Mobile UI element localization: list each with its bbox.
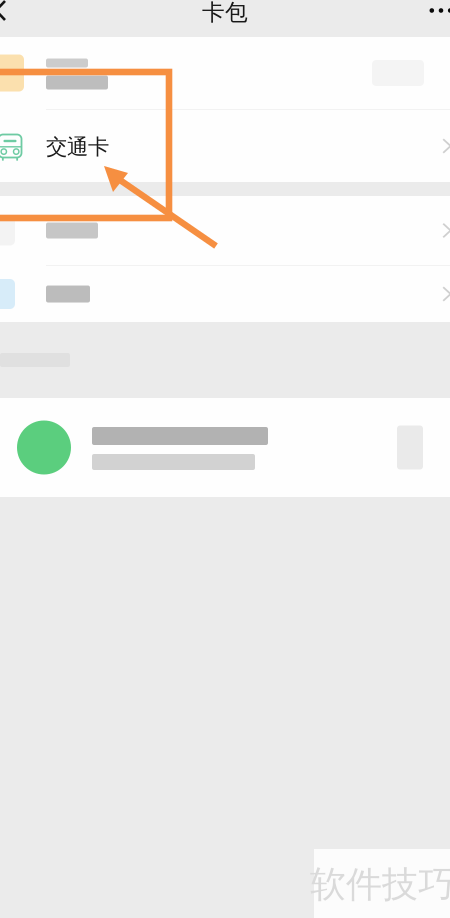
button[interactable]: More options	[404, 0, 450, 31]
button[interactable]	[0, 266, 450, 322]
button[interactable]	[0, 37, 450, 109]
button[interactable]: 交通卡	[0, 110, 450, 182]
staticText: 交通卡	[46, 134, 109, 160]
staticText: 卡包	[202, 0, 248, 26]
button[interactable]: Back	[0, 0, 40, 31]
button[interactable]	[0, 196, 450, 265]
button[interactable]	[0, 398, 450, 497]
staticText: 软件技巧	[310, 862, 450, 907]
